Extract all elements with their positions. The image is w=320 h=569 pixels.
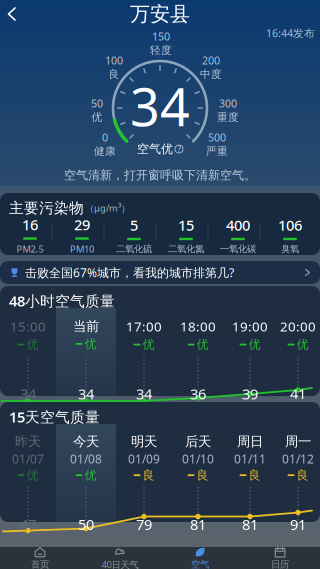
staticText: 300 xyxy=(219,96,237,111)
staticText: 0 xyxy=(102,130,108,145)
staticText: 良 xyxy=(196,468,208,482)
staticText: 01/07 xyxy=(12,451,44,467)
staticText: 优 xyxy=(84,468,96,482)
staticText: 15天空气质量 xyxy=(9,407,100,426)
staticText: 100 xyxy=(105,53,123,68)
staticText: 昨天 xyxy=(15,433,41,450)
staticText: 20:00 xyxy=(280,317,316,335)
staticText: 后天 xyxy=(185,433,211,450)
staticText: 二氧化硫 xyxy=(116,243,152,255)
staticText: 良 xyxy=(108,67,119,81)
staticText: 健康 xyxy=(94,144,116,158)
staticText: 48小时空气质量 xyxy=(9,291,115,310)
button[interactable]: 日历 xyxy=(240,547,320,569)
staticText: 空气清新，打开窗呼吸下清新空气。 xyxy=(64,168,256,183)
staticText: 空气优 xyxy=(137,142,173,156)
staticText: 优 xyxy=(248,337,260,352)
button[interactable]: 返回 xyxy=(0,0,28,28)
staticText: 81 xyxy=(190,514,206,534)
staticText: 今天 xyxy=(73,433,99,450)
staticText: 47 xyxy=(20,514,36,534)
staticText: PM2.5 xyxy=(16,243,43,255)
button[interactable]: 空气 xyxy=(160,547,240,569)
staticText: （μg/m³） xyxy=(85,202,130,214)
staticText: 01/08 xyxy=(70,451,102,467)
staticText: 01/12 xyxy=(282,451,314,467)
staticText: 50 xyxy=(91,96,103,111)
staticText: 周日 xyxy=(237,433,263,450)
staticText: 106 xyxy=(278,215,302,235)
staticText: 良 xyxy=(142,468,154,482)
staticText: 5 xyxy=(130,215,138,235)
staticText: 500 xyxy=(208,130,226,145)
staticText: 优 xyxy=(26,337,38,352)
staticText: 29 xyxy=(74,215,90,234)
staticText: 50 xyxy=(78,514,94,534)
staticText: 15:00 xyxy=(10,317,46,335)
staticText: 一氧化碳 xyxy=(220,243,256,255)
staticText: 34 xyxy=(78,384,94,403)
staticText: 400 xyxy=(226,215,250,235)
staticText: PM10 xyxy=(70,243,94,255)
staticText: 34 xyxy=(130,72,190,141)
staticText: 15 xyxy=(178,215,194,235)
staticText: 81 xyxy=(242,514,258,534)
staticText: 150 xyxy=(152,29,170,44)
staticText: 主要污染物 xyxy=(9,199,84,217)
staticText: 34 xyxy=(20,384,36,403)
staticText: ? xyxy=(177,144,180,154)
staticText: 39 xyxy=(242,384,258,403)
staticText: 19:00 xyxy=(232,317,268,335)
staticText: 明天 xyxy=(131,433,157,450)
staticText: 01/09 xyxy=(128,451,160,467)
staticText: 击败全国67%城市，看我的城市排第几? xyxy=(25,264,234,280)
staticText: 36 xyxy=(190,384,206,403)
staticText: 当前 xyxy=(73,318,99,335)
staticText: 优 xyxy=(196,337,208,352)
staticText: 17:00 xyxy=(126,317,162,335)
button[interactable]: 40日天气 xyxy=(80,547,160,569)
staticText: 中度 xyxy=(200,67,222,81)
staticText: 79 xyxy=(136,514,152,534)
staticText: 首页 xyxy=(31,559,49,569)
button[interactable]: 首页 xyxy=(0,547,80,569)
staticText: 良 xyxy=(296,468,308,482)
staticText: 轻度 xyxy=(150,43,172,57)
staticText: 优 xyxy=(142,337,154,352)
staticText: 周一 xyxy=(285,433,311,450)
staticText: 18:00 xyxy=(180,317,216,335)
staticText: 空气 xyxy=(191,559,209,569)
staticText: 臭氧 xyxy=(281,243,299,255)
staticText: 200 xyxy=(202,53,220,68)
staticText: 优 xyxy=(26,468,38,482)
staticText: 41 xyxy=(290,384,306,403)
staticText: 40日天气 xyxy=(101,558,138,569)
staticText: 优 xyxy=(296,337,308,352)
staticText: 01/11 xyxy=(234,451,266,467)
staticText: 二氧化氮 xyxy=(168,243,204,255)
button[interactable]: 击败全国67%城市，看我的城市排第几? xyxy=(0,261,320,284)
staticText: 34 xyxy=(136,384,152,403)
staticText: 日历 xyxy=(271,559,289,569)
staticText: 16 xyxy=(22,215,38,234)
staticText: 01/10 xyxy=(182,451,214,467)
staticText: 良 xyxy=(248,468,260,482)
staticText: 万安县 xyxy=(130,2,190,26)
staticText: 优 xyxy=(91,110,102,124)
staticText: 优 xyxy=(84,337,96,351)
staticText: 严重 xyxy=(206,144,228,158)
staticText: 91 xyxy=(290,514,306,534)
staticText: 16:44发布 xyxy=(266,26,315,40)
staticText: 重度 xyxy=(217,110,239,124)
